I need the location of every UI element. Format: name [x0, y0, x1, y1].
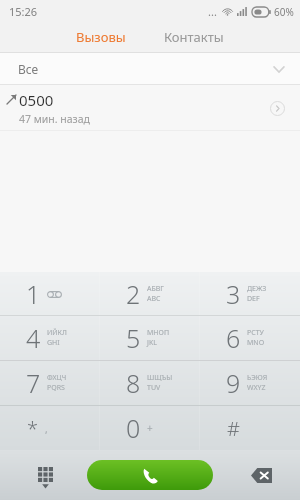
- staticText: #: [227, 415, 240, 442]
- staticText: Все: [18, 61, 39, 77]
- button[interactable]: #: [200, 406, 300, 450]
- staticText: ДЕЖЗ: [247, 284, 267, 294]
- staticText: 5: [126, 321, 141, 355]
- staticText: ЬЭЮЯ: [247, 373, 268, 383]
- button[interactable]: 5: [100, 316, 200, 360]
- staticText: 47 мин. назад: [19, 112, 90, 126]
- staticText: 7: [26, 366, 41, 400]
- staticText: 0500: [19, 90, 54, 110]
- staticText: ШЩЪЫ: [147, 373, 173, 383]
- button[interactable]: 3: [200, 272, 300, 315]
- button[interactable]: *: [0, 406, 100, 450]
- button[interactable]: 2: [100, 272, 200, 315]
- staticText: ,: [45, 422, 48, 436]
- staticText: 60%: [274, 5, 294, 19]
- staticText: 2: [126, 277, 141, 311]
- button[interactable]: Backspace: [244, 458, 278, 492]
- staticText: 9: [226, 366, 241, 400]
- staticText: АБВГ: [147, 284, 164, 294]
- staticText: 1: [26, 277, 41, 311]
- staticText: PQRS: [47, 383, 65, 393]
- staticText: 3: [226, 277, 241, 311]
- button[interactable]: Call: [87, 460, 213, 490]
- button[interactable]: Call details: [264, 95, 290, 121]
- staticText: *: [27, 415, 39, 442]
- button[interactable]: 9: [200, 361, 300, 405]
- staticText: ИЙКЛ: [47, 328, 67, 338]
- button[interactable]: 0: [100, 406, 200, 450]
- staticText: 4: [26, 321, 41, 355]
- staticText: MNO: [247, 338, 265, 348]
- staticText: JKL: [147, 338, 157, 348]
- button[interactable]: Hide keypad: [28, 458, 62, 492]
- staticText: DEF: [247, 294, 260, 304]
- staticText: 0: [126, 411, 141, 445]
- staticText: Вызовы: [76, 28, 126, 46]
- button[interactable]: 1: [0, 272, 100, 315]
- button[interactable]: 0500: [0, 85, 300, 131]
- staticText: +: [147, 421, 153, 435]
- staticText: GHI: [47, 338, 60, 348]
- button[interactable]: Вызовы: [66, 24, 136, 50]
- staticText: ФХЦЧ: [47, 373, 67, 383]
- button[interactable]: 7: [0, 361, 100, 405]
- button[interactable]: Контакты: [154, 24, 234, 50]
- button[interactable]: 8: [100, 361, 200, 405]
- staticText: МНОП: [147, 328, 170, 338]
- staticText: Контакты: [164, 28, 224, 46]
- button[interactable]: 6: [200, 316, 300, 360]
- button[interactable]: Все: [0, 53, 300, 84]
- staticText: 8: [126, 366, 141, 400]
- staticText: TUV: [147, 383, 161, 393]
- staticText: ABC: [147, 294, 161, 304]
- staticText: WXYZ: [247, 383, 266, 393]
- button[interactable]: 4: [0, 316, 100, 360]
- staticText: 6: [226, 321, 241, 355]
- staticText: ...: [208, 4, 217, 19]
- staticText: 15:26: [9, 4, 38, 19]
- staticText: РСТУ: [247, 328, 264, 338]
